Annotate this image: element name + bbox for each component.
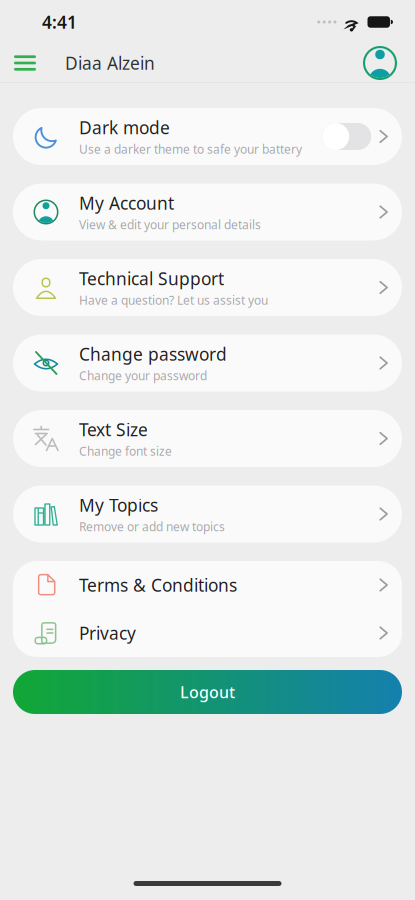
staticText: Terms & Conditions	[79, 573, 237, 596]
button[interactable]: Terms & Conditions	[13, 561, 402, 609]
staticText: Remove or add new topics	[79, 518, 225, 534]
button[interactable]: Dark mode	[13, 108, 402, 165]
button[interactable]: Privacy	[13, 609, 402, 657]
staticText: View & edit your personal details	[79, 216, 261, 232]
button[interactable]: My Topics	[13, 485, 402, 542]
staticText: Diaa Alzein	[65, 51, 155, 74]
staticText: Technical Support	[79, 267, 224, 290]
staticText: Change font size	[79, 443, 172, 459]
staticText: Logout	[180, 681, 235, 703]
staticText: Have a question? Let us assist you	[79, 292, 268, 308]
staticText: Text Size	[79, 418, 148, 441]
staticText: Dark mode	[79, 116, 170, 139]
staticText: My Topics	[79, 493, 158, 516]
button[interactable]: Text Size	[13, 410, 402, 467]
staticText: Privacy	[79, 621, 136, 644]
staticText: Change your password	[79, 367, 207, 383]
button[interactable]: Technical Support	[13, 259, 402, 316]
button[interactable]: Menu	[0, 43, 50, 82]
staticText: 4:41	[42, 10, 77, 33]
button[interactable]: Logout	[13, 670, 402, 714]
staticText: Change password	[79, 342, 227, 365]
staticText: Use a darker theme to safe your battery	[79, 141, 302, 157]
staticText: My Account	[79, 191, 174, 214]
button[interactable]: Profile	[363, 46, 415, 80]
button[interactable]: Change password	[13, 334, 402, 391]
button[interactable]: My Account	[13, 183, 402, 240]
